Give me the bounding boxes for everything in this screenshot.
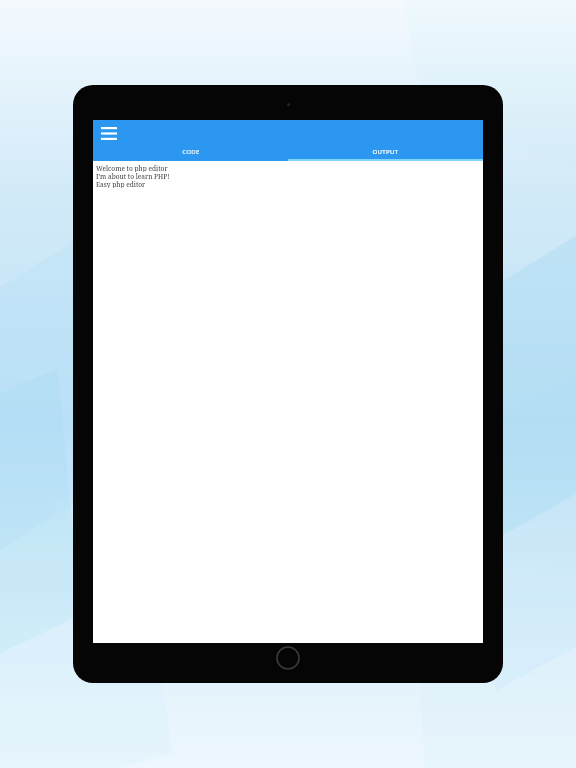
staticText: Easy php editor [96,180,146,188]
button[interactable]: CODE [93,145,288,161]
button[interactable]: Open navigation menu [98,123,120,143]
button[interactable]: OUTPUT [288,145,483,161]
staticText: Welcome to php editor [96,164,168,172]
staticText: OUTPUT [372,148,399,156]
staticText: I'm about to learn PHP! [96,172,170,180]
staticText: CODE [182,148,200,156]
